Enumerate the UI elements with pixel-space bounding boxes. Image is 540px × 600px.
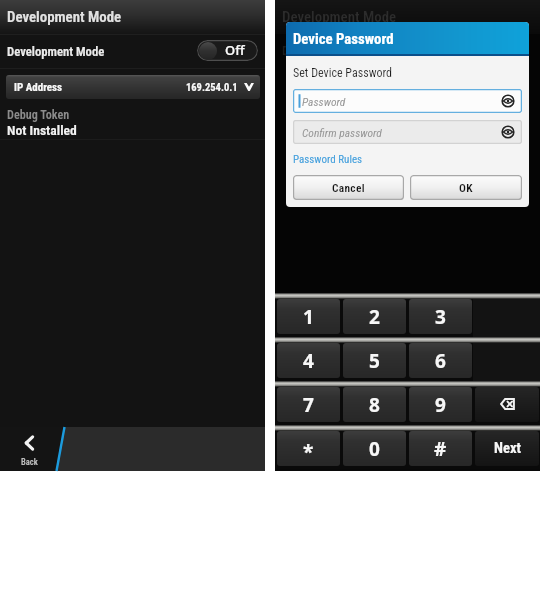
staticText: 0 xyxy=(369,436,380,462)
staticText: Next xyxy=(494,439,521,456)
button[interactable]: Off xyxy=(197,40,258,61)
staticText: 7 xyxy=(303,392,314,418)
staticText: Password xyxy=(302,95,346,108)
staticText: 9 xyxy=(435,392,446,418)
button[interactable]: # xyxy=(409,431,472,466)
staticText: 2 xyxy=(369,304,380,330)
button[interactable]: Password Rules xyxy=(293,153,363,166)
button[interactable]: 4 xyxy=(277,343,340,378)
staticText: Development Mode xyxy=(7,8,122,25)
staticText: 169.254.0.1 xyxy=(186,81,238,93)
button[interactable]: Confirm password xyxy=(293,120,522,144)
staticText: 4 xyxy=(303,348,314,374)
button[interactable]: IP Address xyxy=(6,75,260,99)
button[interactable]: 5 xyxy=(343,343,406,378)
button[interactable]: 9 xyxy=(409,387,472,422)
button[interactable]: OK xyxy=(410,175,522,200)
staticText: Development Mode xyxy=(282,43,380,58)
staticText: # xyxy=(434,436,447,462)
staticText: IP Address xyxy=(14,81,63,94)
staticText: * xyxy=(303,439,314,465)
other: Show password xyxy=(501,125,515,139)
staticText: 3 xyxy=(435,304,446,330)
button[interactable]: 6 xyxy=(409,343,472,378)
staticText: Confirm password xyxy=(302,126,382,139)
button[interactable]: 2 xyxy=(343,299,406,334)
button[interactable]: Password xyxy=(293,89,522,113)
staticText: Cancel xyxy=(332,181,365,194)
button[interactable]: * xyxy=(277,431,340,466)
staticText: Development Mode xyxy=(7,44,105,59)
staticText: 5 xyxy=(369,348,380,374)
staticText: Not Installed xyxy=(7,122,77,138)
button[interactable]: 3 xyxy=(409,299,472,334)
staticText: OK xyxy=(459,181,473,194)
staticText: Back xyxy=(21,457,38,467)
staticText: 1 xyxy=(303,304,314,330)
staticText: Development Mode xyxy=(282,8,397,25)
button[interactable]: 0 xyxy=(343,431,406,466)
button[interactable]: 7 xyxy=(277,387,340,422)
button[interactable]: Back xyxy=(0,427,58,471)
staticText: 8 xyxy=(369,392,380,418)
staticText: 6 xyxy=(435,348,446,374)
button[interactable]: Cancel xyxy=(293,175,404,200)
other: Show password xyxy=(501,94,515,108)
button[interactable] xyxy=(0,104,265,139)
staticText: Device Password xyxy=(293,30,394,47)
button[interactable]: Next xyxy=(475,431,539,466)
button[interactable] xyxy=(0,35,265,68)
button[interactable]: 8 xyxy=(343,387,406,422)
other: Delete xyxy=(500,398,515,410)
button[interactable]: 1 xyxy=(277,299,340,334)
staticText: Debug Token xyxy=(7,108,70,122)
staticText: Off xyxy=(225,41,245,59)
staticText: Set Device Password xyxy=(293,66,392,80)
button[interactable]: Delete xyxy=(475,387,539,422)
